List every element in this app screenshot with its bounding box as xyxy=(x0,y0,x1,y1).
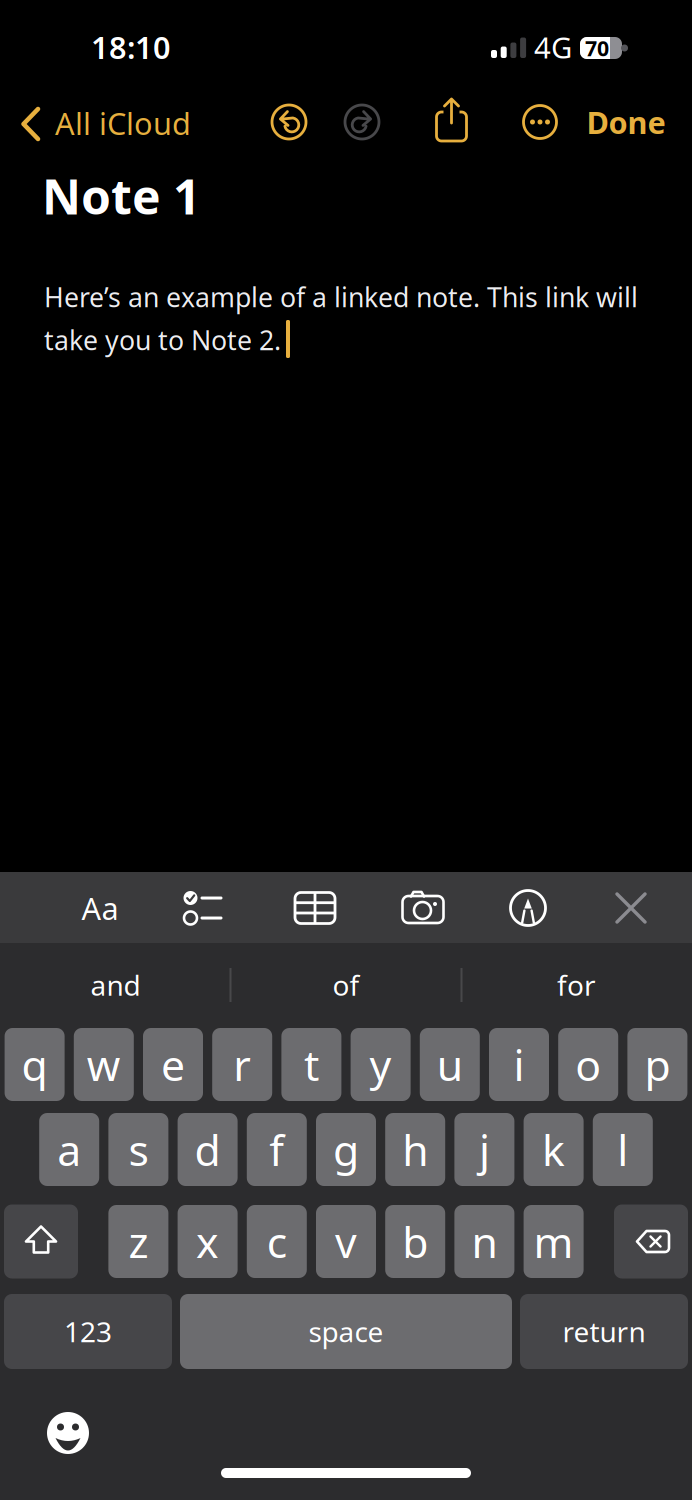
button[interactable]: Undo xyxy=(265,98,313,146)
staticText: Note 1 xyxy=(42,164,200,228)
staticText: s xyxy=(128,1121,148,1178)
staticText: b xyxy=(402,1213,428,1270)
button[interactable]: Redo xyxy=(338,98,386,146)
staticText: Aa xyxy=(81,888,118,928)
button[interactable]: Checklist xyxy=(174,876,238,940)
staticText: e xyxy=(161,1036,185,1093)
staticText: i xyxy=(513,1036,524,1093)
button[interactable]: c xyxy=(247,1205,307,1278)
staticText: space xyxy=(308,1313,383,1350)
button[interactable]: p xyxy=(627,1028,687,1101)
staticText: 4G xyxy=(534,27,572,66)
staticText: c xyxy=(267,1213,287,1270)
button[interactable]: n xyxy=(454,1205,514,1278)
staticText: for xyxy=(557,966,596,1004)
staticText: of xyxy=(332,966,359,1004)
staticText: z xyxy=(128,1213,148,1270)
button[interactable]: e xyxy=(143,1028,203,1101)
button[interactable]: i xyxy=(489,1028,549,1101)
button[interactable]: a xyxy=(39,1113,99,1186)
button[interactable]: h xyxy=(385,1113,445,1186)
staticText: a xyxy=(57,1121,81,1178)
button[interactable]: Table xyxy=(283,876,347,940)
staticText: o xyxy=(575,1036,601,1093)
button[interactable]: for xyxy=(464,945,689,1025)
button[interactable]: Close xyxy=(599,876,663,940)
staticText: t xyxy=(304,1036,319,1093)
button[interactable]: space xyxy=(180,1294,512,1369)
button[interactable]: s xyxy=(108,1113,168,1186)
staticText: 70 xyxy=(585,34,609,62)
button[interactable]: z xyxy=(108,1205,168,1278)
staticText: x xyxy=(196,1213,219,1270)
staticText: Here’s an example of a linked note. This… xyxy=(44,279,638,315)
staticText: m xyxy=(534,1213,574,1270)
button[interactable]: Share xyxy=(425,93,477,149)
staticText: l xyxy=(617,1121,628,1178)
button[interactable]: r xyxy=(212,1028,272,1101)
staticText: h xyxy=(402,1121,428,1178)
button[interactable]: of xyxy=(233,945,458,1025)
staticText: take you to Note 2. xyxy=(44,322,281,358)
staticText: f xyxy=(269,1121,284,1178)
button[interactable]: 123 xyxy=(4,1294,172,1369)
button[interactable]: k xyxy=(524,1113,584,1186)
staticText: j xyxy=(479,1121,490,1178)
button[interactable]: t xyxy=(281,1028,341,1101)
button[interactable]: w xyxy=(74,1028,134,1101)
button[interactable]: o xyxy=(558,1028,618,1101)
button[interactable]: Markup xyxy=(496,876,560,940)
button[interactable]: x xyxy=(178,1205,238,1278)
button[interactable]: More xyxy=(516,98,564,146)
button[interactable]: and xyxy=(3,945,228,1025)
button[interactable]: y xyxy=(351,1028,411,1101)
button[interactable]: j xyxy=(454,1113,514,1186)
button[interactable]: g xyxy=(316,1113,376,1186)
button[interactable]: m xyxy=(524,1205,584,1278)
staticText: Done xyxy=(586,102,665,142)
staticText: w xyxy=(87,1036,121,1093)
staticText: n xyxy=(471,1213,497,1270)
button[interactable]: Format xyxy=(65,876,135,940)
staticText: return xyxy=(562,1313,645,1350)
button[interactable]: Camera xyxy=(391,876,455,940)
staticText: q xyxy=(22,1036,48,1093)
button[interactable]: return xyxy=(520,1294,688,1369)
staticText: v xyxy=(335,1213,357,1270)
button[interactable]: Done xyxy=(556,94,692,150)
button[interactable]: All iCloud xyxy=(0,62,240,182)
staticText: 123 xyxy=(64,1313,112,1350)
button[interactable]: q xyxy=(5,1028,65,1101)
button[interactable]: l xyxy=(593,1113,653,1186)
button[interactable]: b xyxy=(385,1205,445,1278)
staticText: g xyxy=(333,1121,359,1178)
button[interactable]: Emoji xyxy=(36,1401,100,1465)
staticText: u xyxy=(437,1036,463,1093)
staticText: 18:10 xyxy=(91,27,171,67)
button[interactable]: Delete xyxy=(614,1204,688,1278)
staticText: y xyxy=(370,1036,392,1093)
button[interactable]: v xyxy=(316,1205,376,1278)
staticText: and xyxy=(90,966,140,1004)
button[interactable]: u xyxy=(420,1028,480,1101)
staticText: k xyxy=(542,1121,565,1178)
button[interactable]: d xyxy=(178,1113,238,1186)
staticText: d xyxy=(195,1121,221,1178)
staticText: r xyxy=(233,1036,251,1093)
staticText: All iCloud xyxy=(55,103,191,143)
button[interactable]: f xyxy=(247,1113,307,1186)
button[interactable]: Shift xyxy=(4,1204,78,1278)
staticText: p xyxy=(644,1036,670,1093)
